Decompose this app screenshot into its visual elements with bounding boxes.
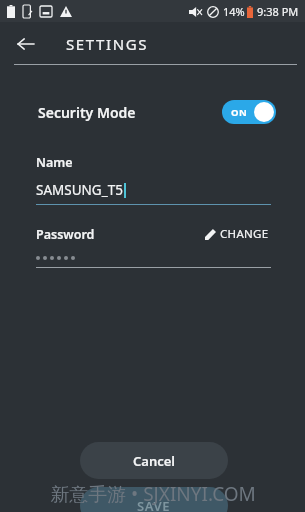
button[interactable]: Cancel <box>80 442 228 479</box>
button[interactable]: Security Mode <box>0 95 305 129</box>
staticText: SAVE <box>137 497 171 512</box>
button[interactable]: CHANGE <box>203 223 271 245</box>
staticText: SETTINGS <box>66 34 148 54</box>
staticText: CHANGE <box>220 226 269 242</box>
staticText: Security Mode <box>38 103 136 122</box>
staticText: ON <box>231 106 248 119</box>
staticText: Name <box>36 154 73 171</box>
staticText: Password <box>36 226 95 243</box>
staticText: Cancel <box>133 452 176 470</box>
staticText: 14% <box>223 4 245 19</box>
staticText: SAMSUNG_T5 <box>36 181 123 199</box>
button[interactable]: Back <box>10 28 42 60</box>
staticText: 9:38 PM <box>257 4 299 19</box>
staticText: 新意手游 • SJXINYI.COM <box>50 481 256 507</box>
button[interactable]: SAVE <box>80 487 228 512</box>
